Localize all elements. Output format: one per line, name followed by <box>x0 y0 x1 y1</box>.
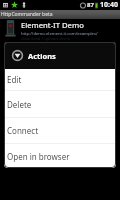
staticText: Delete <box>7 99 32 110</box>
staticText: Connect <box>7 125 39 136</box>
staticText: download / upload demo <box>21 36 71 42</box>
other: Actions <box>12 50 23 61</box>
staticText: 87 <box>87 1 94 9</box>
staticText: Actions <box>28 51 56 61</box>
button[interactable]: Delete <box>4 91 116 117</box>
button[interactable]: Element-IT Demo <box>0 19 120 42</box>
button[interactable]: Edit <box>4 69 116 90</box>
staticText: 10:40 <box>100 0 118 10</box>
staticText: Open in browser <box>7 151 70 162</box>
staticText: http://demo.element-it.com/examples/ <box>21 31 98 37</box>
staticText: Element-IT Demo <box>21 20 84 30</box>
button[interactable]: Connect <box>4 118 116 143</box>
button[interactable]: Open in browser <box>4 144 116 168</box>
staticText: HttpCommander beta <box>1 11 53 18</box>
staticText: Edit <box>7 74 22 85</box>
